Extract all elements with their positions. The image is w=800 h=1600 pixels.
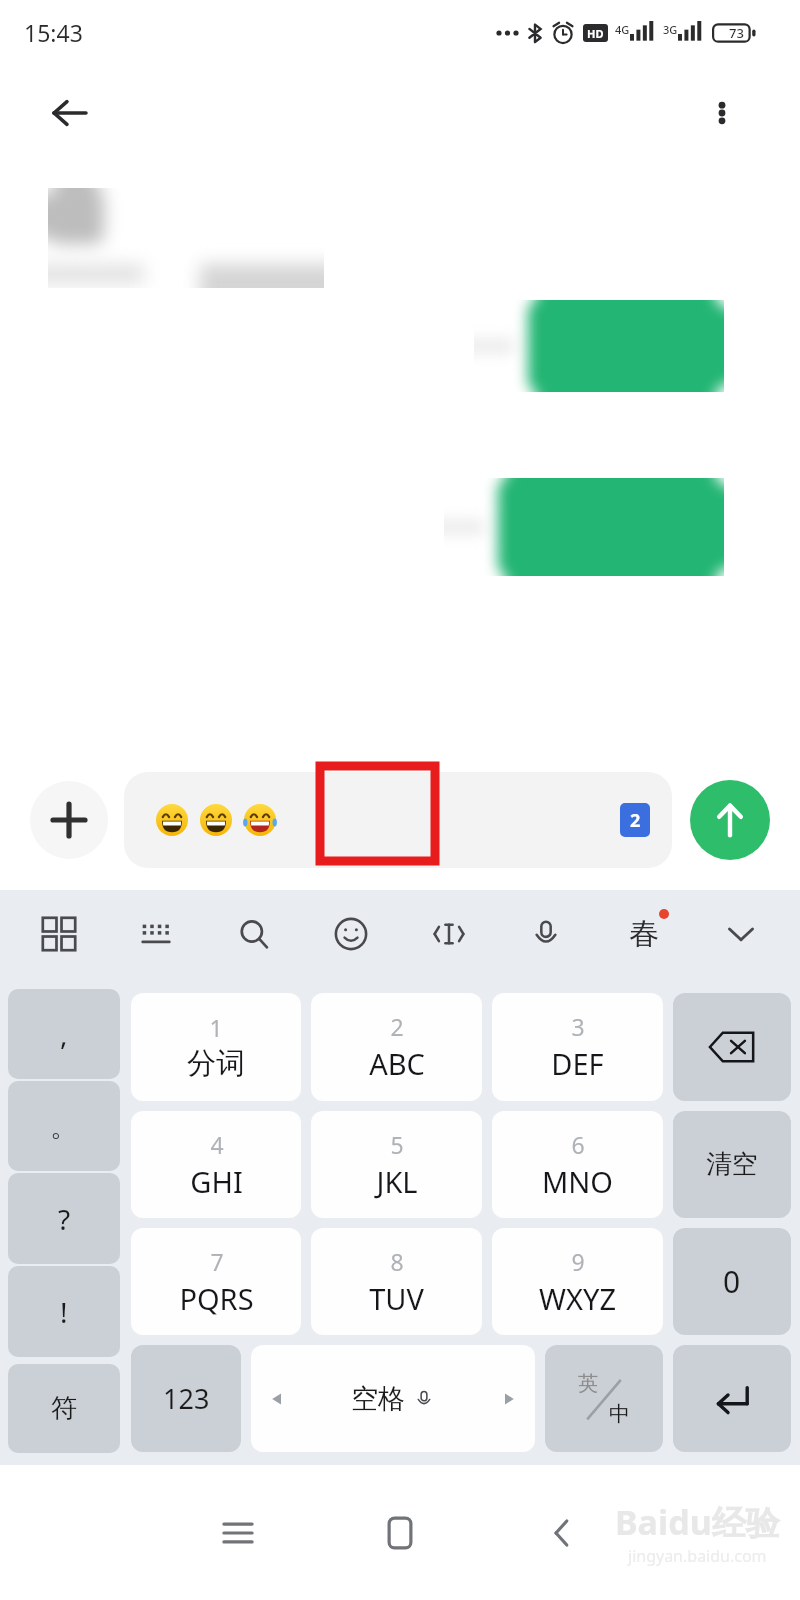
staticText: 9: [571, 1246, 585, 1277]
staticText: 3: [571, 1011, 585, 1042]
staticText: 符: [51, 1392, 77, 1425]
staticText: 。: [50, 1109, 78, 1144]
staticText: 8: [390, 1246, 404, 1277]
staticText: !: [60, 1293, 68, 1331]
button[interactable]: Home: [360, 1493, 440, 1573]
button[interactable]: Voice input: [517, 905, 575, 963]
staticText: JKL: [376, 1162, 418, 1201]
staticText: 4: [210, 1129, 224, 1160]
staticText: 73: [729, 24, 744, 42]
button[interactable]: Theme: [615, 905, 673, 963]
button[interactable]: !: [8, 1266, 120, 1357]
staticText: jingyan.baidu.com: [628, 1545, 767, 1567]
button[interactable]: ,: [8, 989, 120, 1079]
staticText: HD: [587, 26, 604, 41]
button[interactable]: 123: [131, 1345, 241, 1452]
button[interactable]: [673, 993, 791, 1101]
staticText: 空格: [351, 1382, 405, 1416]
staticText: GHI: [190, 1162, 243, 1201]
button[interactable]: Recents: [198, 1493, 278, 1573]
button[interactable]: 清空: [673, 1111, 791, 1218]
button[interactable]: Apps: [30, 905, 88, 963]
button[interactable]: Move cursor: [420, 905, 478, 963]
button[interactable]: 空格: [251, 1345, 535, 1452]
staticText: 123: [163, 1380, 210, 1417]
button[interactable]: 。: [8, 1081, 120, 1171]
staticText: TUV: [369, 1279, 424, 1318]
staticText: ?: [58, 1200, 71, 1238]
button[interactable]: 2: [311, 993, 482, 1101]
button[interactable]: 英: [545, 1345, 663, 1452]
button[interactable]: 7: [131, 1228, 301, 1335]
staticText: 3G: [663, 22, 678, 37]
staticText: MNO: [542, 1162, 613, 1201]
button[interactable]: Add attachment: [30, 781, 108, 859]
staticText: 春: [629, 915, 659, 953]
button[interactable]: 4: [131, 1111, 301, 1218]
staticText: PQRS: [179, 1279, 254, 1318]
button[interactable]: 6: [492, 1111, 663, 1218]
button[interactable]: Back: [42, 85, 98, 141]
button[interactable]: ?: [8, 1173, 120, 1264]
button[interactable]: Emoji: [322, 905, 380, 963]
staticText: Baidu经验: [615, 1499, 780, 1545]
button[interactable]: More options: [694, 85, 750, 141]
button[interactable]: Send: [690, 780, 770, 860]
staticText: 英: [578, 1371, 598, 1396]
button[interactable]: 0: [673, 1228, 791, 1335]
staticText: ABC: [369, 1044, 425, 1083]
button[interactable]: Back: [522, 1493, 602, 1573]
staticText: 5: [390, 1129, 404, 1160]
staticText: 1: [209, 1012, 223, 1043]
staticText: ,: [60, 1015, 68, 1053]
button[interactable]: 符: [8, 1364, 120, 1453]
staticText: 0: [723, 1261, 741, 1302]
button[interactable]: Search: [225, 905, 283, 963]
staticText: 15:43: [24, 17, 83, 48]
button[interactable]: Hide keyboard: [712, 905, 770, 963]
button[interactable]: 8: [311, 1228, 482, 1335]
button[interactable]: 1: [131, 993, 301, 1101]
staticText: 分词: [187, 1045, 245, 1082]
button[interactable]: 5: [311, 1111, 482, 1218]
button[interactable]: Keyboard layout: [127, 905, 185, 963]
button[interactable]: [673, 1345, 791, 1452]
staticText: 2: [390, 1011, 404, 1042]
button[interactable]: 2: [124, 772, 672, 868]
staticText: 7: [210, 1246, 224, 1277]
staticText: WXYZ: [539, 1279, 616, 1318]
button[interactable]: 9: [492, 1228, 663, 1335]
staticText: 中: [609, 1401, 630, 1427]
staticText: 6: [571, 1129, 585, 1160]
staticText: 2: [630, 808, 641, 833]
button[interactable]: 3: [492, 993, 663, 1101]
staticText: 4G: [615, 22, 630, 37]
staticText: DEF: [551, 1044, 604, 1083]
staticText: 清空: [706, 1148, 758, 1181]
